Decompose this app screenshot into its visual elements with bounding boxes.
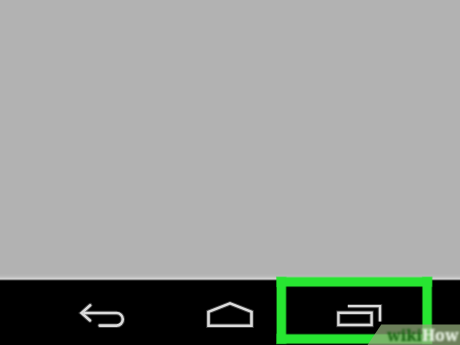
- staticText: How: [422, 324, 459, 345]
- button[interactable]: Back: [71, 296, 131, 336]
- other: Recent apps highlight: [277, 277, 432, 344]
- staticText: wiki: [387, 324, 423, 345]
- button[interactable]: Recent apps: [330, 298, 390, 334]
- button[interactable]: Home: [200, 296, 260, 336]
